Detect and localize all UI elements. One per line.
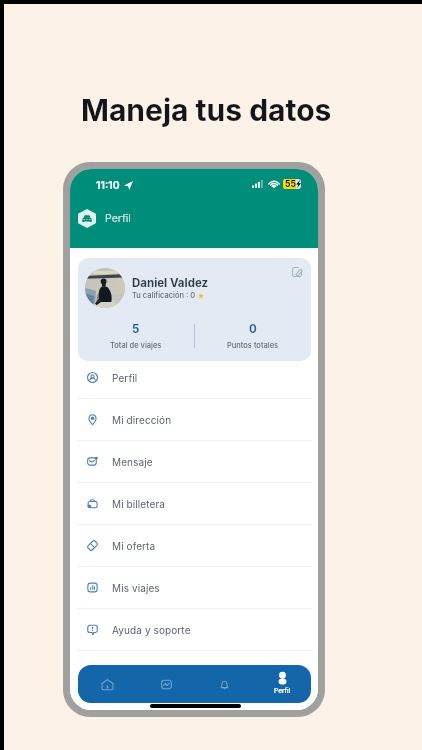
staticText: Perfil [112, 372, 138, 384]
staticText: Puntos totales [227, 341, 279, 350]
staticText: Tu calificación : 0 [132, 291, 196, 300]
button[interactable]: Perfil [253, 665, 311, 703]
staticText: Mi dirección [112, 414, 172, 426]
button[interactable]: Mi dirección [70, 399, 318, 441]
staticText: Ayuda y soporte [112, 624, 191, 636]
staticText: Daniel Valdez [132, 276, 209, 290]
staticText: 11:10 [96, 179, 120, 192]
button[interactable]: Mensaje [70, 441, 318, 483]
button[interactable]: Notificaciones [195, 665, 253, 703]
staticText: 55 [285, 179, 296, 189]
staticText: Total de viajes [110, 341, 162, 350]
staticText: Perfil [105, 212, 131, 225]
button[interactable]: Inicio [78, 665, 137, 703]
button[interactable]: Mis viajes [70, 567, 318, 609]
button[interactable]: Perfil [70, 357, 318, 399]
button[interactable]: Mi oferta [70, 525, 318, 567]
staticText: Mi oferta [112, 540, 156, 552]
button[interactable]: Ayuda y soporte [70, 609, 318, 651]
staticText: Maneja tus datos [81, 92, 332, 128]
staticText: Perfil [274, 687, 291, 695]
staticText: 0 [249, 322, 257, 336]
button[interactable]: Editar perfil [291, 266, 303, 278]
staticText: Mi billetera [112, 498, 166, 510]
staticText: Mis viajes [112, 582, 160, 594]
staticText: Mensaje [112, 456, 153, 468]
staticText: 5 [132, 322, 140, 336]
button[interactable]: Actividad [137, 665, 195, 703]
button[interactable]: Mi billetera [70, 483, 318, 525]
